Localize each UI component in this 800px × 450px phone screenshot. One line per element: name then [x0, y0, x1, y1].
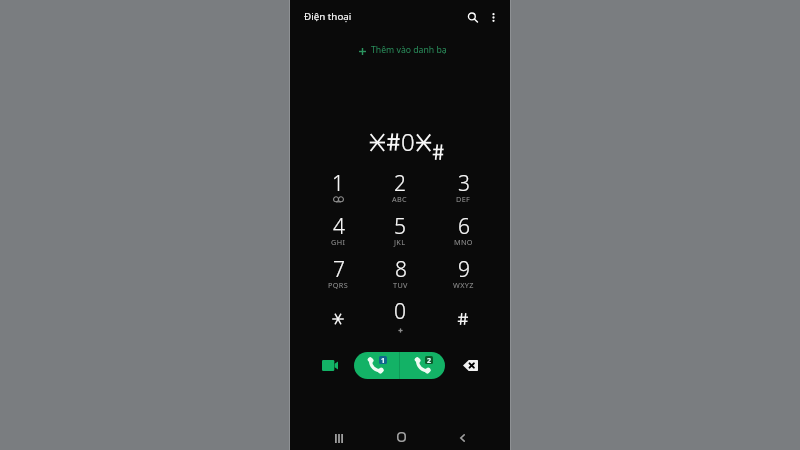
button[interactable]: 7	[309, 255, 367, 295]
staticText: 9	[458, 255, 470, 284]
staticText: 2	[427, 356, 432, 364]
staticText: MNO	[454, 237, 473, 247]
staticText: TUV	[393, 280, 408, 290]
staticText: 6	[458, 212, 470, 241]
button[interactable]: More options	[480, 4, 506, 30]
button[interactable]: 6	[434, 212, 492, 252]
button[interactable]: 4	[309, 212, 367, 252]
button[interactable]: Recent apps	[328, 427, 350, 449]
button[interactable]: Search	[459, 4, 485, 30]
staticText: 0	[394, 297, 406, 326]
button[interactable]: Video call	[316, 352, 344, 379]
button[interactable]: Backspace	[456, 352, 484, 379]
button[interactable]: 9	[434, 255, 492, 295]
staticText: WXYZ	[453, 280, 474, 290]
staticText: PQRS	[328, 280, 349, 290]
staticText: ABC	[392, 194, 408, 204]
staticText: 7	[333, 255, 345, 284]
staticText: Điện thoại	[304, 10, 352, 23]
staticText: Thêm vào danh bạ	[371, 44, 447, 56]
staticText: 1	[332, 169, 344, 198]
button[interactable]: 0	[371, 297, 429, 337]
staticText: 4	[333, 212, 345, 241]
button[interactable]: 5	[371, 212, 429, 252]
staticText: 3	[458, 169, 470, 198]
button[interactable]: Home	[390, 426, 412, 448]
button[interactable]: Thêm vào danh bạ	[357, 43, 449, 57]
staticText: 8	[395, 255, 407, 284]
staticText: GHI	[331, 237, 346, 247]
staticText: 2	[394, 169, 406, 198]
button[interactable]: 1	[309, 169, 367, 209]
button[interactable]: Call with SIM 1	[354, 352, 399, 379]
button[interactable]: Back	[451, 427, 473, 449]
button[interactable]: Pound	[434, 297, 492, 337]
staticText: JKL	[394, 237, 406, 247]
staticText: 5	[394, 212, 406, 241]
button[interactable]: Star	[309, 297, 367, 337]
staticText: DEF	[456, 194, 471, 204]
staticText: 0	[401, 125, 415, 158]
button[interactable]: Call with SIM 2	[400, 352, 445, 379]
staticText: 1	[381, 356, 386, 364]
button[interactable]: 8	[371, 255, 429, 295]
button[interactable]: 3	[434, 169, 492, 209]
button[interactable]: 2	[371, 169, 429, 209]
